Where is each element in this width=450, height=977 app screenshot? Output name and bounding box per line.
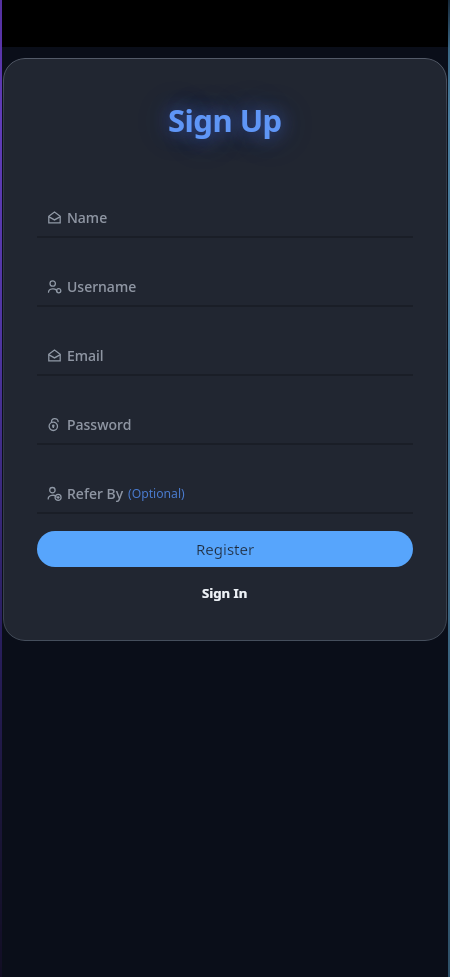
button[interactable]: Email	[37, 341, 413, 369]
staticText: Password	[67, 415, 132, 434]
staticText: Username	[67, 277, 137, 296]
button[interactable]: Refer By	[37, 479, 413, 507]
staticText: Sign Up	[168, 99, 282, 141]
staticText: (Optional)	[128, 485, 185, 502]
staticText: Name	[67, 208, 108, 227]
button[interactable]: Sign In	[3, 582, 447, 604]
staticText: Register	[196, 539, 255, 559]
button[interactable]: Name	[37, 203, 413, 231]
staticText: Email	[67, 346, 104, 365]
staticText: Sign Up	[168, 99, 282, 141]
staticText: Sign In	[202, 584, 248, 602]
button[interactable]: Password	[37, 410, 413, 438]
button[interactable]: Register	[37, 531, 413, 567]
staticText: Refer By	[67, 484, 124, 503]
button[interactable]: Username	[37, 272, 413, 300]
